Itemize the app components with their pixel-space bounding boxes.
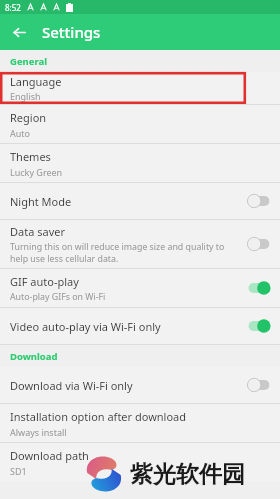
staticText: SD1 [10, 465, 27, 477]
staticText: Night Mode [10, 194, 72, 209]
staticText: GIF auto-play [10, 274, 79, 289]
staticText: Turning this on will reduce image size a… [10, 241, 238, 264]
staticText: English [10, 90, 41, 102]
button[interactable]: Back [6, 19, 32, 45]
staticText: General [10, 55, 47, 68]
staticText: Download via Wi-Fi only [10, 378, 133, 393]
button[interactable]: Toggle on [246, 318, 272, 334]
button[interactable]: Toggle off [246, 193, 272, 209]
staticText: Settings [42, 22, 101, 42]
button[interactable]: Night Mode [0, 183, 280, 219]
staticText: 8:52 [5, 2, 21, 13]
staticText: 紫光软件园 [130, 460, 245, 489]
button[interactable]: Toggle off [246, 236, 272, 252]
button[interactable]: Installation option after download [0, 404, 280, 442]
staticText: Auto-play GIFs on Wi-Fi [10, 291, 106, 303]
staticText: Video auto-play via Wi-Fi only [10, 319, 161, 334]
staticText: Auto [10, 127, 31, 139]
staticText: Always install [10, 426, 67, 438]
button[interactable]: GIF auto-play [0, 269, 280, 307]
staticText: Themes [10, 149, 51, 164]
staticText: Download path [10, 448, 89, 463]
staticText: Lucky Green [10, 166, 63, 178]
staticText: Download [10, 350, 58, 363]
button[interactable]: Video auto-play via Wi-Fi only [0, 308, 280, 344]
button[interactable]: Region [0, 105, 280, 143]
staticText: Region [10, 110, 47, 125]
button[interactable]: Themes [0, 144, 280, 182]
button[interactable]: Toggle on [246, 280, 272, 296]
button[interactable]: Download via Wi-Fi only [0, 367, 280, 403]
button[interactable]: Toggle off [246, 377, 272, 393]
button[interactable]: Data saver [0, 220, 280, 268]
staticText: Installation option after download [10, 409, 187, 424]
button[interactable]: Download path [0, 443, 280, 481]
button[interactable]: Language [0, 72, 246, 104]
staticText: Language [10, 74, 62, 89]
staticText: Data saver [10, 224, 65, 239]
